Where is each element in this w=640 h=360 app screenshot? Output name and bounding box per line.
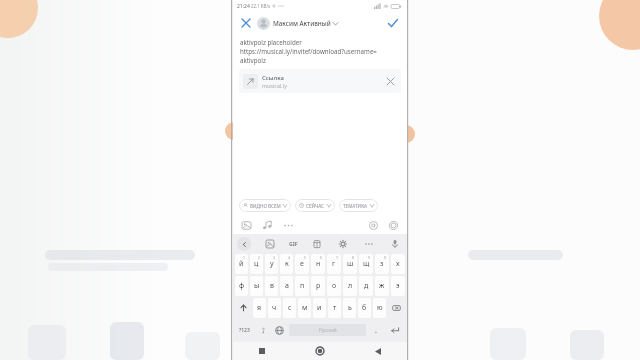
button[interactable]: х: [391, 254, 405, 274]
button[interactable]: и: [313, 298, 326, 318]
button[interactable]: ш: [343, 254, 357, 274]
button[interactable]: ы: [250, 276, 263, 296]
staticText: Ссылка: [262, 74, 284, 82]
staticText: к: [285, 259, 289, 269]
button[interactable]: ?123: [234, 320, 255, 340]
button[interactable]: з: [375, 254, 389, 274]
button[interactable]: н: [311, 254, 325, 274]
staticText: ж: [379, 281, 385, 291]
button[interactable]: Photo: [240, 219, 253, 232]
button[interactable]: ь: [343, 298, 356, 318]
button[interactable]: ю: [373, 298, 386, 318]
staticText: а: [285, 281, 289, 291]
button[interactable]: б: [358, 298, 371, 318]
button[interactable]: Music: [261, 219, 274, 232]
button[interactable]: л: [343, 276, 357, 296]
staticText: Максим Активный: [273, 19, 331, 28]
button[interactable]: СЕЙЧАС: [295, 199, 335, 212]
staticText: 8: [352, 255, 355, 260]
staticText: р: [316, 281, 321, 291]
button[interactable]: щ: [359, 254, 373, 274]
button[interactable]: о: [327, 276, 341, 296]
button[interactable]: е: [295, 254, 309, 274]
staticText: aktivpolz: [240, 56, 266, 64]
button[interactable]: Русский: [289, 324, 366, 336]
button[interactable]: Back: [237, 237, 251, 251]
button[interactable]: Ссылка: [239, 69, 401, 93]
staticText: п: [300, 281, 305, 291]
button[interactable]: с: [283, 298, 296, 318]
button[interactable]: г: [327, 254, 341, 274]
button[interactable]: д: [359, 276, 373, 296]
button[interactable]: м: [298, 298, 311, 318]
staticText: о: [332, 281, 337, 291]
button[interactable]: ц: [250, 254, 263, 274]
button[interactable]: More options: [362, 237, 376, 251]
button[interactable]: Change language: [271, 320, 287, 340]
staticText: н: [316, 259, 321, 269]
button[interactable]: Back: [349, 342, 407, 360]
button[interactable]: GIF: [289, 240, 298, 247]
button[interactable]: п: [295, 276, 309, 296]
button[interactable]: Keyboard settings: [336, 237, 350, 251]
staticText: я: [257, 303, 262, 313]
staticText: т: [333, 303, 337, 313]
staticText: 4: [288, 255, 291, 260]
button[interactable]: Clipboard: [310, 237, 324, 251]
button[interactable]: р: [311, 276, 325, 296]
staticText: э: [396, 281, 400, 291]
staticText: ш: [347, 259, 354, 269]
button[interactable]: й: [235, 254, 248, 274]
button[interactable]: у: [265, 254, 278, 274]
button[interactable]: я: [253, 298, 266, 318]
staticText: 22,1 KB/s: [251, 3, 271, 9]
staticText: г: [332, 259, 336, 269]
staticText: з: [380, 259, 384, 269]
staticText: musical.ly: [262, 82, 287, 89]
button[interactable]: Sticker: [263, 237, 277, 251]
button[interactable]: Enter: [384, 320, 406, 340]
staticText: с: [288, 303, 292, 313]
button[interactable]: More: [282, 219, 295, 232]
button[interactable]: Publish: [385, 15, 401, 31]
staticText: щ: [363, 259, 370, 269]
staticText: .: [375, 326, 377, 335]
button[interactable]: Comma: [255, 320, 271, 340]
button[interactable]: э: [391, 276, 405, 296]
button[interactable]: а: [280, 276, 293, 296]
staticText: ф: [239, 281, 245, 291]
staticText: 9: [368, 255, 371, 260]
button[interactable]: ч: [268, 298, 281, 318]
button[interactable]: Settings: [387, 219, 400, 232]
staticText: ч: [272, 303, 277, 313]
button[interactable]: в: [265, 276, 278, 296]
staticText: 6: [320, 255, 323, 260]
button[interactable]: Recents: [233, 342, 291, 360]
staticText: 3: [273, 255, 276, 260]
button[interactable]: к: [280, 254, 293, 274]
button[interactable]: ВИДНО ВСЕМ: [239, 199, 291, 212]
button[interactable]: ж: [375, 276, 389, 296]
staticText: 5: [304, 255, 307, 260]
button[interactable]: Mention: [367, 219, 380, 232]
button[interactable]: Period: [368, 320, 384, 340]
button[interactable]: Voice input: [388, 237, 402, 251]
staticText: 0: [384, 255, 387, 260]
staticText: 7: [336, 255, 339, 260]
staticText: GIF: [289, 240, 298, 247]
button[interactable]: ф: [235, 276, 248, 296]
staticText: https://musical.ly/invitef/download?user…: [240, 47, 377, 55]
button[interactable]: Remove link: [383, 74, 397, 88]
button[interactable]: ТЕМАТИКА: [339, 199, 378, 212]
staticText: ы: [254, 281, 260, 291]
button[interactable]: Home: [291, 342, 349, 360]
staticText: и: [317, 303, 322, 313]
staticText: СЕЙЧАС: [306, 203, 325, 209]
button[interactable]: Максим Активный: [257, 17, 338, 30]
button[interactable]: Backspace: [388, 298, 405, 318]
button[interactable]: Shift: [235, 298, 251, 318]
staticText: б: [362, 303, 367, 313]
button[interactable]: т: [328, 298, 341, 318]
button[interactable]: Close: [239, 16, 253, 30]
staticText: aktivpolz placeholder: [240, 38, 302, 46]
